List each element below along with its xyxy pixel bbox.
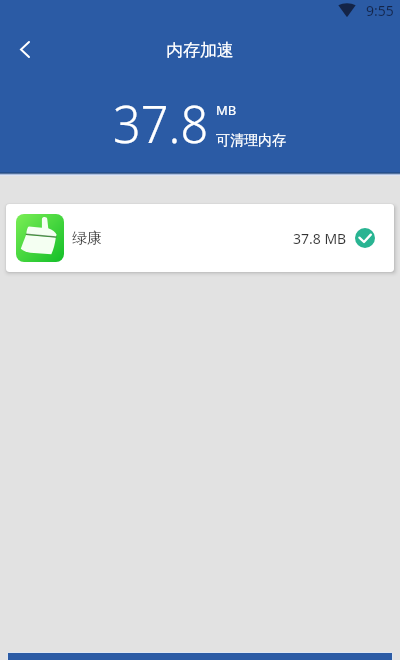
staticText: 可清理内存: [216, 132, 286, 150]
staticText: 37.8: [113, 87, 208, 158]
staticText: 9:55: [366, 1, 394, 20]
button[interactable]: 绿康: [6, 204, 394, 272]
staticText: 37.8 MB: [293, 229, 347, 248]
staticText: 内存加速: [0, 40, 400, 61]
staticText: MB: [216, 101, 237, 119]
staticText: 绿康: [72, 229, 102, 248]
button[interactable]: Back: [7, 31, 43, 67]
